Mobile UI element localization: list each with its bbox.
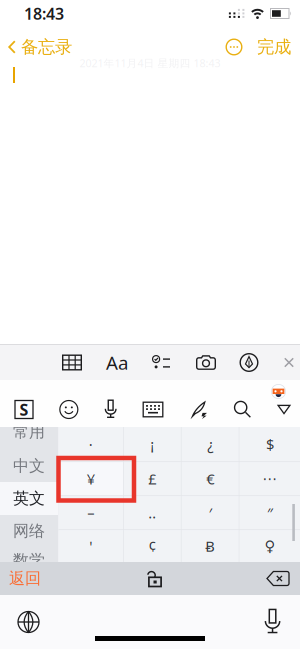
staticText: $	[266, 434, 274, 454]
staticText: €	[206, 469, 214, 489]
button[interactable]: 标记	[239, 353, 258, 372]
staticText: ″	[267, 503, 273, 523]
button[interactable]: ′	[182, 496, 239, 529]
button[interactable]: '	[58, 530, 123, 562]
staticText: 常用	[13, 422, 45, 442]
staticText: ⋯	[262, 470, 277, 487]
button[interactable]: ″	[239, 496, 300, 529]
button[interactable]: 拍照	[196, 355, 216, 370]
button[interactable]: 切换键盘	[0, 610, 40, 633]
staticText: 18:43	[24, 3, 64, 24]
button[interactable]: 返回	[0, 569, 41, 588]
staticText: ♀	[264, 538, 275, 554]
staticText: Ƀ	[205, 536, 215, 556]
button[interactable]: 数学	[0, 544, 58, 577]
button[interactable]: 网络	[0, 514, 58, 547]
staticText: ‥	[148, 503, 156, 523]
button[interactable]: ·	[58, 427, 123, 461]
staticText: ·	[89, 434, 93, 454]
button[interactable]: Ƀ	[182, 530, 239, 562]
button[interactable]: 搜索	[233, 400, 252, 419]
button[interactable]: 表情	[59, 399, 79, 419]
staticText: '	[89, 536, 92, 556]
button[interactable]: 格式	[106, 350, 128, 375]
staticText: –	[87, 503, 94, 523]
staticText: 2021年11月4日 星期四 18:43	[79, 56, 220, 70]
button[interactable]: ¥	[58, 462, 123, 495]
button[interactable]: 语音	[104, 399, 118, 419]
button[interactable]: –	[58, 496, 123, 529]
button[interactable]: ♀	[239, 530, 300, 562]
button[interactable]: ¡	[124, 427, 181, 461]
button[interactable]: 核对清单	[152, 355, 170, 370]
button[interactable]: 返回备忘录	[0, 36, 72, 58]
button[interactable]: 关闭	[283, 357, 294, 368]
staticText: 数学	[13, 551, 45, 570]
button[interactable]: 手写	[188, 399, 208, 419]
button[interactable]: 英文	[0, 482, 58, 515]
staticText: 中文	[13, 456, 45, 476]
button[interactable]: £	[124, 462, 181, 495]
button[interactable]: 插入表格	[62, 354, 82, 370]
staticText: 网络	[13, 521, 45, 541]
button[interactable]: ⋯	[239, 462, 300, 495]
button[interactable]: 搜狗	[14, 399, 34, 419]
button[interactable]: ¿	[182, 427, 239, 461]
staticText: ¥	[87, 469, 95, 489]
staticText: 备忘录	[21, 36, 72, 58]
button[interactable]: 听写	[263, 608, 300, 635]
staticText: 完成	[257, 36, 291, 58]
button[interactable]: 智能助手	[271, 384, 286, 399]
staticText: £	[148, 469, 156, 489]
staticText: ′	[209, 503, 212, 523]
staticText: ¡	[150, 434, 154, 454]
button[interactable]: ¢	[124, 530, 181, 562]
button[interactable]: 常用	[0, 415, 58, 448]
button[interactable]: 删除	[266, 570, 300, 586]
staticText: Aa	[106, 350, 128, 375]
button[interactable]: 更多	[225, 38, 243, 56]
button[interactable]: €	[182, 462, 239, 495]
staticText: S	[19, 399, 28, 420]
staticText: ¢	[148, 536, 156, 556]
button[interactable]: 锁定	[144, 569, 162, 587]
button[interactable]: $	[239, 427, 300, 461]
staticText: ¿	[207, 434, 213, 454]
button[interactable]: 键盘	[142, 401, 163, 417]
button[interactable]: 收起	[277, 404, 291, 415]
button[interactable]: 中文	[0, 449, 58, 482]
staticText: 返回	[9, 569, 41, 588]
staticText: 英文	[13, 489, 45, 508]
button[interactable]: ‥	[124, 496, 181, 529]
button[interactable]: 完成	[243, 36, 300, 58]
